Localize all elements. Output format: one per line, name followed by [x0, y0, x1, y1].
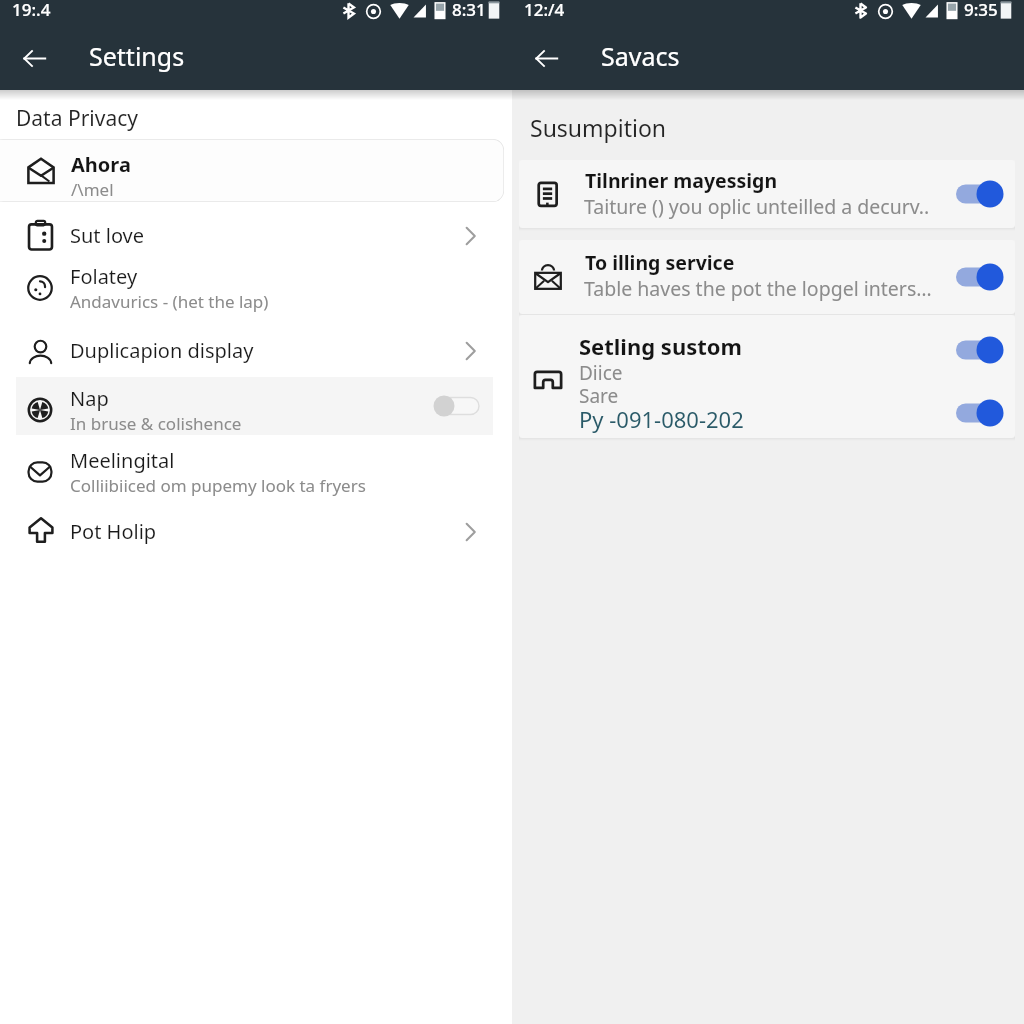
staticText: Taiture () you oplic unteilled a decurv.…: [584, 193, 936, 220]
staticText: Folatey: [70, 263, 138, 290]
staticText: Andavurics - (het the lap): [70, 290, 269, 313]
staticText: Sut love: [70, 222, 145, 249]
staticText: Data Privacy: [16, 104, 138, 133]
button[interactable]: Sut love: [0, 212, 512, 260]
staticText: In bruse & colishence: [70, 412, 242, 435]
staticText: Pot Holip: [70, 518, 157, 545]
button[interactable]: [519, 315, 1015, 438]
button[interactable]: [519, 160, 1015, 228]
button[interactable]: Nap: [16, 377, 493, 435]
button[interactable]: Duplicapion display: [0, 327, 512, 375]
staticText: Susumpition: [530, 112, 667, 143]
button[interactable]: Pot Holip: [0, 508, 512, 556]
staticText: Duplicapion display: [70, 337, 254, 364]
staticText: Diice: [579, 360, 623, 386]
staticText: /\mel: [71, 178, 114, 201]
staticText: Table haves the pot the lopgel intersen …: [584, 275, 936, 302]
staticText: Ahora: [71, 151, 131, 178]
staticText: Settings: [89, 39, 185, 73]
staticText: Nap: [70, 385, 109, 412]
staticText: To illing service: [585, 249, 735, 276]
staticText: Meelingital: [70, 447, 175, 474]
staticText: Colliibiiced om pupemy look ta fryers: [70, 474, 366, 497]
staticText: 12:/4: [524, 0, 565, 21]
staticText: 8:31: [452, 0, 486, 21]
button[interactable]: Folatey: [0, 255, 512, 313]
staticText: 19:.4: [12, 0, 51, 21]
staticText: Savacs: [601, 39, 680, 73]
staticText: Py -091-080-202: [579, 404, 744, 434]
staticText: Setling sustom: [579, 331, 742, 361]
button[interactable]: Meelingital: [0, 439, 512, 497]
button[interactable]: [519, 240, 1015, 314]
button[interactable]: Back: [524, 36, 568, 80]
button[interactable]: Ahora: [0, 139, 504, 202]
staticText: 9:35: [964, 0, 998, 21]
staticText: Tilnriner mayessign: [585, 167, 778, 194]
staticText: Sare: [579, 383, 619, 409]
button[interactable]: Back: [12, 36, 56, 80]
